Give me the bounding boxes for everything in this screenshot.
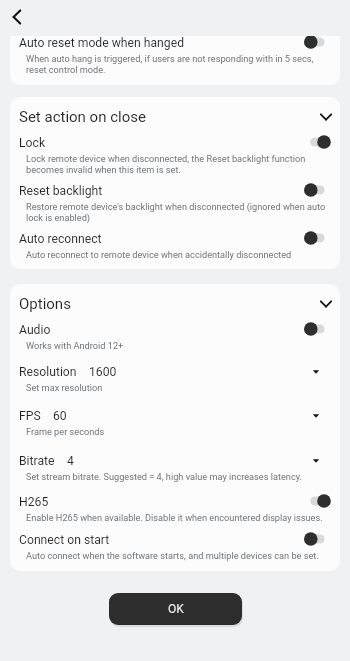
staticText: Resolution [19,365,77,379]
button[interactable]: Set action on close [10,109,340,126]
staticText: Auto connect when the software starts, a… [26,550,319,561]
staticText: Set max resolution [26,382,103,393]
staticText: Reset backlight [19,184,103,198]
staticText: Enable H265 when available. Disable it w… [26,512,323,523]
staticText: Auto reconnect [19,232,102,246]
button[interactable]: Options [10,296,340,313]
button[interactable]: Open dropdown [309,454,323,468]
staticText: 4 [67,454,74,468]
button[interactable]: Switch off [304,231,331,245]
button[interactable]: Bitrate [10,454,340,482]
staticText: FPS [19,409,41,423]
staticText: Audio [19,323,51,337]
button[interactable]: Resolution [10,365,340,393]
button[interactable]: Switch off [304,183,331,197]
button[interactable]: Audio [10,323,340,351]
button[interactable]: OK [109,593,242,625]
staticText: 1600 [89,365,117,379]
staticText: Lock [19,136,46,150]
button[interactable]: Auto reset mode when hanged [10,36,340,75]
staticText: Lock remote device when disconnected, th… [26,153,329,175]
staticText: Frame per seconds [26,426,105,437]
button[interactable]: Switch off [304,322,331,336]
button[interactable]: Reset backlight [10,184,340,223]
button[interactable]: Lock [10,136,340,175]
staticText: Works with Android 12+ [26,340,124,351]
staticText: Restore remote device's backlight when d… [26,201,329,223]
button[interactable]: Connect on start [10,533,340,561]
button[interactable]: Back [1,1,33,33]
staticText: Connect on start [19,533,110,547]
staticText: Auto reset mode when hanged [19,36,185,50]
staticText: Bitrate [19,454,55,468]
button[interactable]: Switch off [304,36,331,49]
staticText: 60 [53,409,67,423]
staticText: Options [19,296,71,313]
button[interactable]: Collapse section [316,108,336,125]
staticText: Set action on close [19,109,146,126]
button[interactable]: Open dropdown [309,409,323,423]
button[interactable]: Open dropdown [309,365,323,379]
button[interactable]: Switch off [304,532,331,546]
button[interactable]: FPS [10,409,340,437]
button[interactable]: Switch on [304,494,331,508]
button[interactable]: Auto reconnect [10,232,340,260]
staticText: H265 [19,495,49,509]
staticText: When auto hang is triggered, if users ar… [26,53,329,75]
button[interactable]: Collapse section [316,295,336,312]
staticText: OK [168,602,184,616]
button[interactable]: Switch on [304,135,331,149]
staticText: Set stream bitrate. Suggested = 4, high … [26,471,303,482]
button[interactable]: H265 [10,495,340,523]
staticText: Auto reconnect to remote device when acc… [26,249,292,260]
